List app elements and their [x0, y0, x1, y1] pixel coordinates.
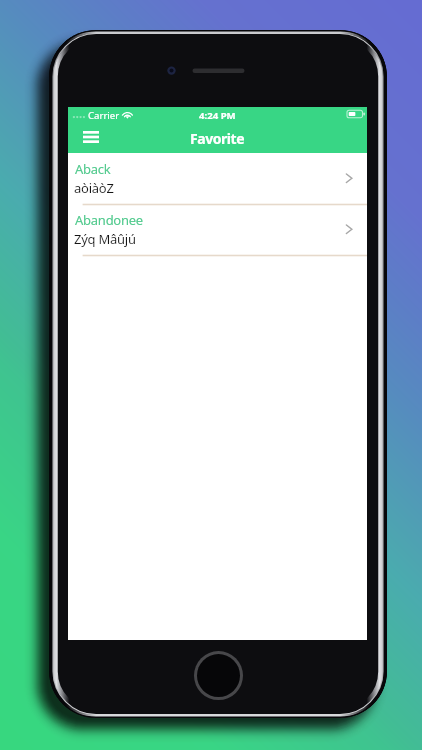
staticText: Zýq Mâûjú	[74, 230, 136, 248]
button[interactable]: Aback	[68, 153, 367, 204]
staticText: aòiàòZ	[74, 179, 114, 197]
staticText: 4:24 PM	[199, 109, 236, 122]
button[interactable]: Menu	[83, 127, 115, 153]
button[interactable]: Abandonee	[68, 204, 367, 255]
staticText: Carrier	[88, 109, 120, 122]
staticText: Aback	[75, 160, 111, 178]
staticText: Favorite	[190, 129, 245, 148]
staticText: Abandonee	[75, 211, 143, 229]
